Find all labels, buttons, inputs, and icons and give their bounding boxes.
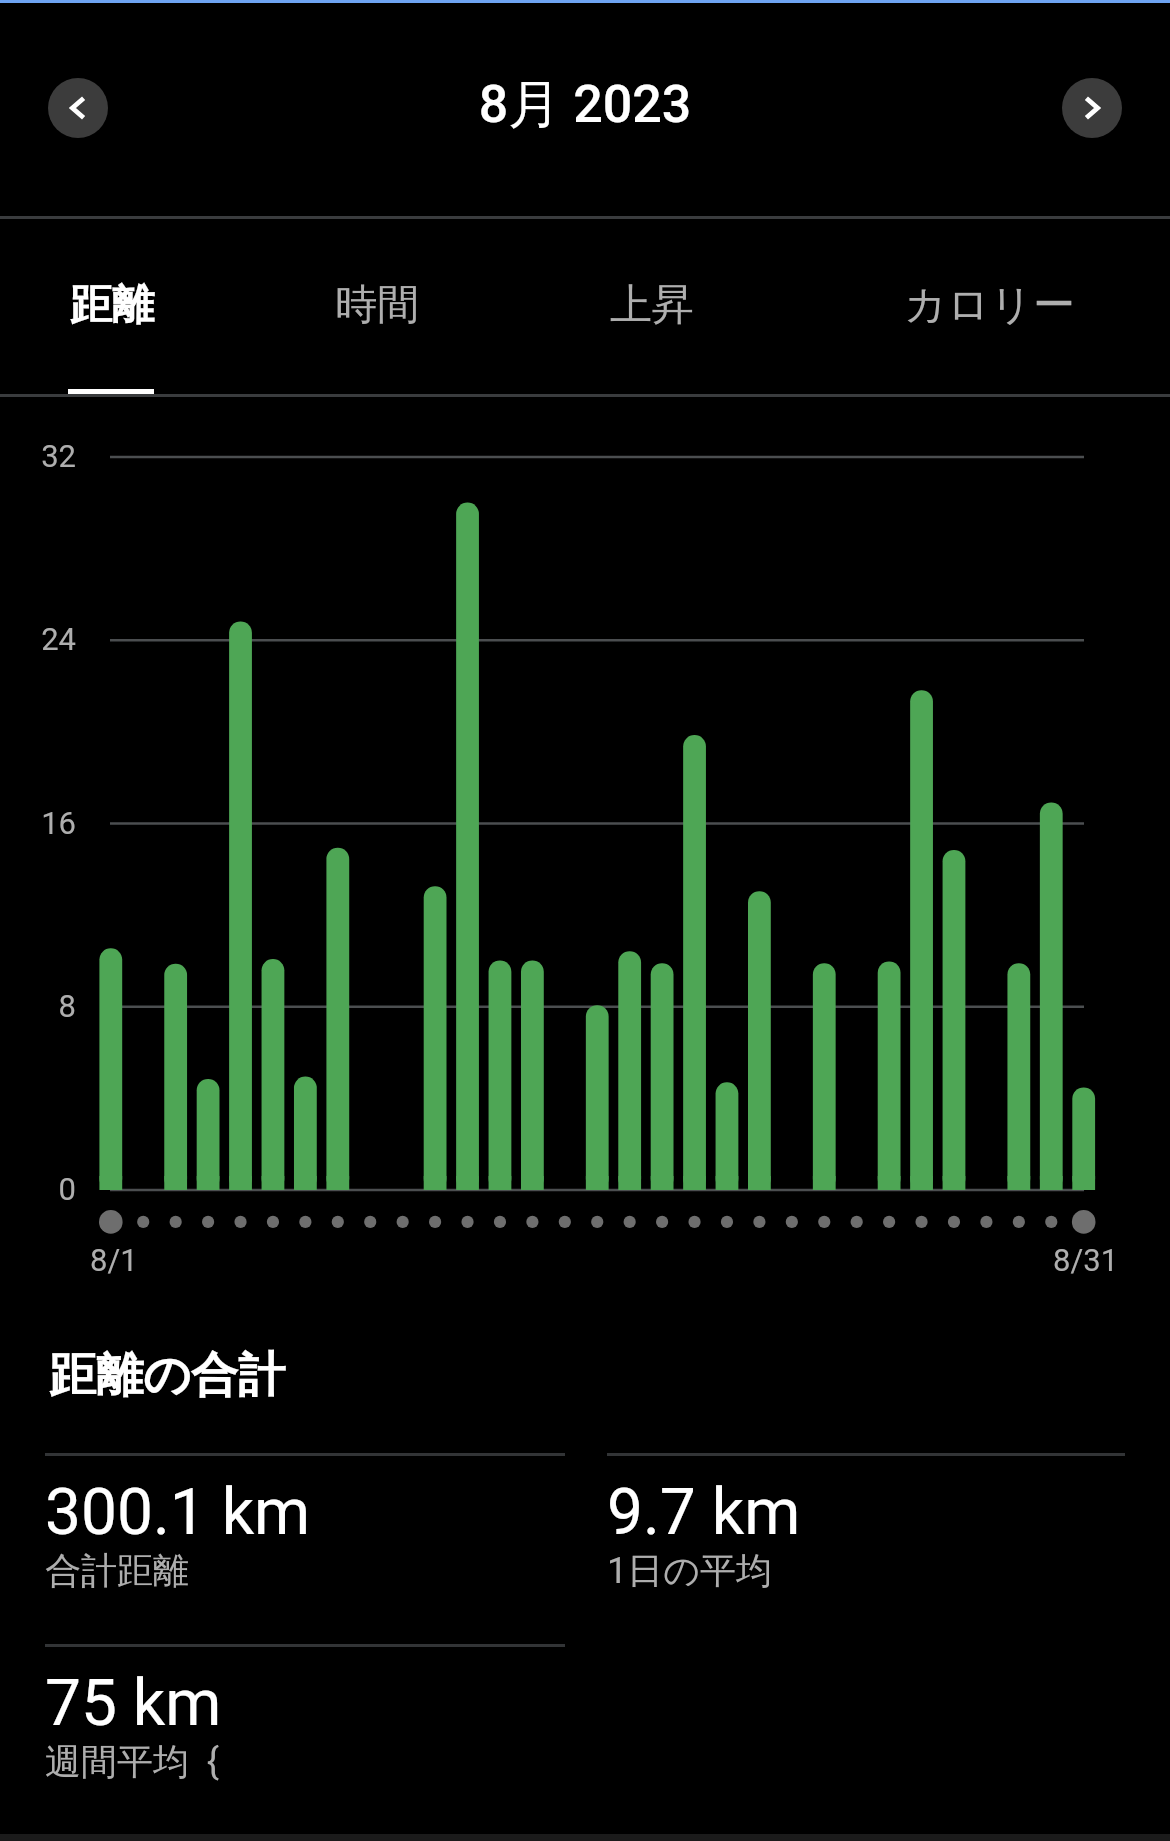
button[interactable]: 75 km: [45, 1644, 565, 1819]
staticText: 9.7 km: [607, 1475, 801, 1550]
button[interactable]: Previous month: [48, 78, 108, 138]
staticText: 8月 2023: [0, 72, 1170, 138]
staticText: 合計距離: [45, 1548, 189, 1593]
staticText: 0: [0, 1171, 76, 1207]
staticText: 上昇: [610, 279, 694, 332]
button[interactable]: 距離: [0, 222, 247, 394]
staticText: 8/31: [1053, 1242, 1119, 1278]
staticText: カロリー: [904, 279, 1075, 332]
button[interactable]: 300.1 km: [45, 1453, 565, 1628]
staticText: 24: [0, 621, 76, 657]
staticText: 1日の平均: [607, 1548, 773, 1593]
button[interactable]: 時間: [243, 222, 511, 394]
staticText: 距離の合計: [49, 1346, 286, 1405]
button[interactable]: 9.7 km: [607, 1453, 1125, 1628]
button[interactable]: 上昇: [516, 222, 788, 394]
staticText: 16: [0, 805, 76, 841]
staticText: 週間平均 {: [45, 1739, 220, 1784]
staticText: 32: [0, 438, 76, 474]
staticText: 8/1: [90, 1242, 138, 1278]
staticText: 距離: [70, 279, 154, 332]
staticText: 75 km: [45, 1666, 222, 1741]
staticText: 時間: [335, 279, 419, 332]
staticText: 8: [0, 988, 76, 1024]
button[interactable]: カロリー: [803, 222, 1170, 394]
button[interactable]: Next month: [1062, 78, 1122, 138]
staticText: 300.1 km: [45, 1475, 311, 1550]
